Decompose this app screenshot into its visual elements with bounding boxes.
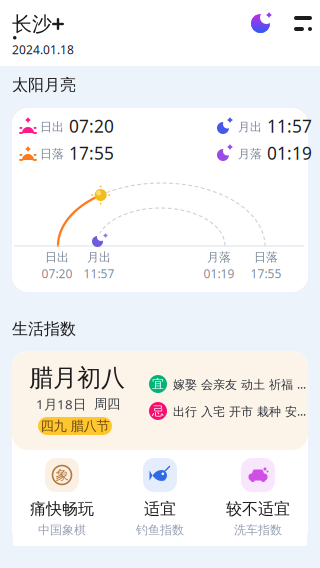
button[interactable]: 较不适宜 [209, 450, 307, 546]
staticText: 周四 [94, 396, 120, 412]
staticText: 痛快畅玩 [30, 499, 94, 519]
staticText: 月落 [238, 147, 262, 161]
staticText: 长沙 [12, 12, 52, 36]
staticText: 17:55 [69, 141, 114, 164]
staticText: 1月18日 [36, 395, 86, 413]
staticText: 象 [55, 467, 68, 483]
staticText: 太阳月亮 [12, 75, 76, 95]
staticText: 腊月初八 [29, 363, 125, 393]
staticText: 嫁娶 会亲友 动土 祈福 纳畜… [173, 376, 307, 392]
staticText: 月落 [207, 250, 231, 265]
staticText: 2024.01.18 [12, 41, 74, 57]
staticText: 月出 [87, 250, 111, 265]
staticText: 日落 [254, 250, 278, 265]
button[interactable]: 象 [13, 450, 111, 546]
staticText: 11:57 [267, 114, 312, 137]
staticText: 生活指数 [12, 319, 76, 339]
button[interactable]: 长沙 [12, 13, 68, 35]
button[interactable]: 夜间模式 [251, 11, 275, 35]
staticText: 较不适宜 [226, 499, 290, 519]
button[interactable]: 更多 [294, 12, 312, 34]
staticText: 出行 入宅 开市 栽种 安葬 … [173, 403, 307, 419]
staticText: 四九 腊八节 [40, 418, 109, 434]
staticText: 07:20 [69, 114, 114, 137]
staticText: 忌 [152, 404, 164, 418]
staticText: 01:19 [267, 141, 312, 164]
staticText: 01:19 [203, 266, 234, 282]
button[interactable]: 适宜 [111, 450, 209, 546]
staticText: 洗车指数 [234, 523, 282, 537]
staticText: 日落 [40, 147, 64, 161]
staticText: 月出 [238, 120, 262, 134]
staticText: 07:20 [41, 266, 72, 282]
staticText: 钓鱼指数 [136, 523, 184, 537]
staticText: 适宜 [144, 499, 176, 519]
staticText: 宜 [152, 377, 164, 391]
staticText: 日出 [45, 250, 69, 265]
staticText: 17:55 [250, 266, 281, 282]
staticText: 日出 [40, 120, 64, 134]
staticText: 11:57 [83, 266, 114, 282]
staticText: 中国象棋 [38, 523, 86, 537]
